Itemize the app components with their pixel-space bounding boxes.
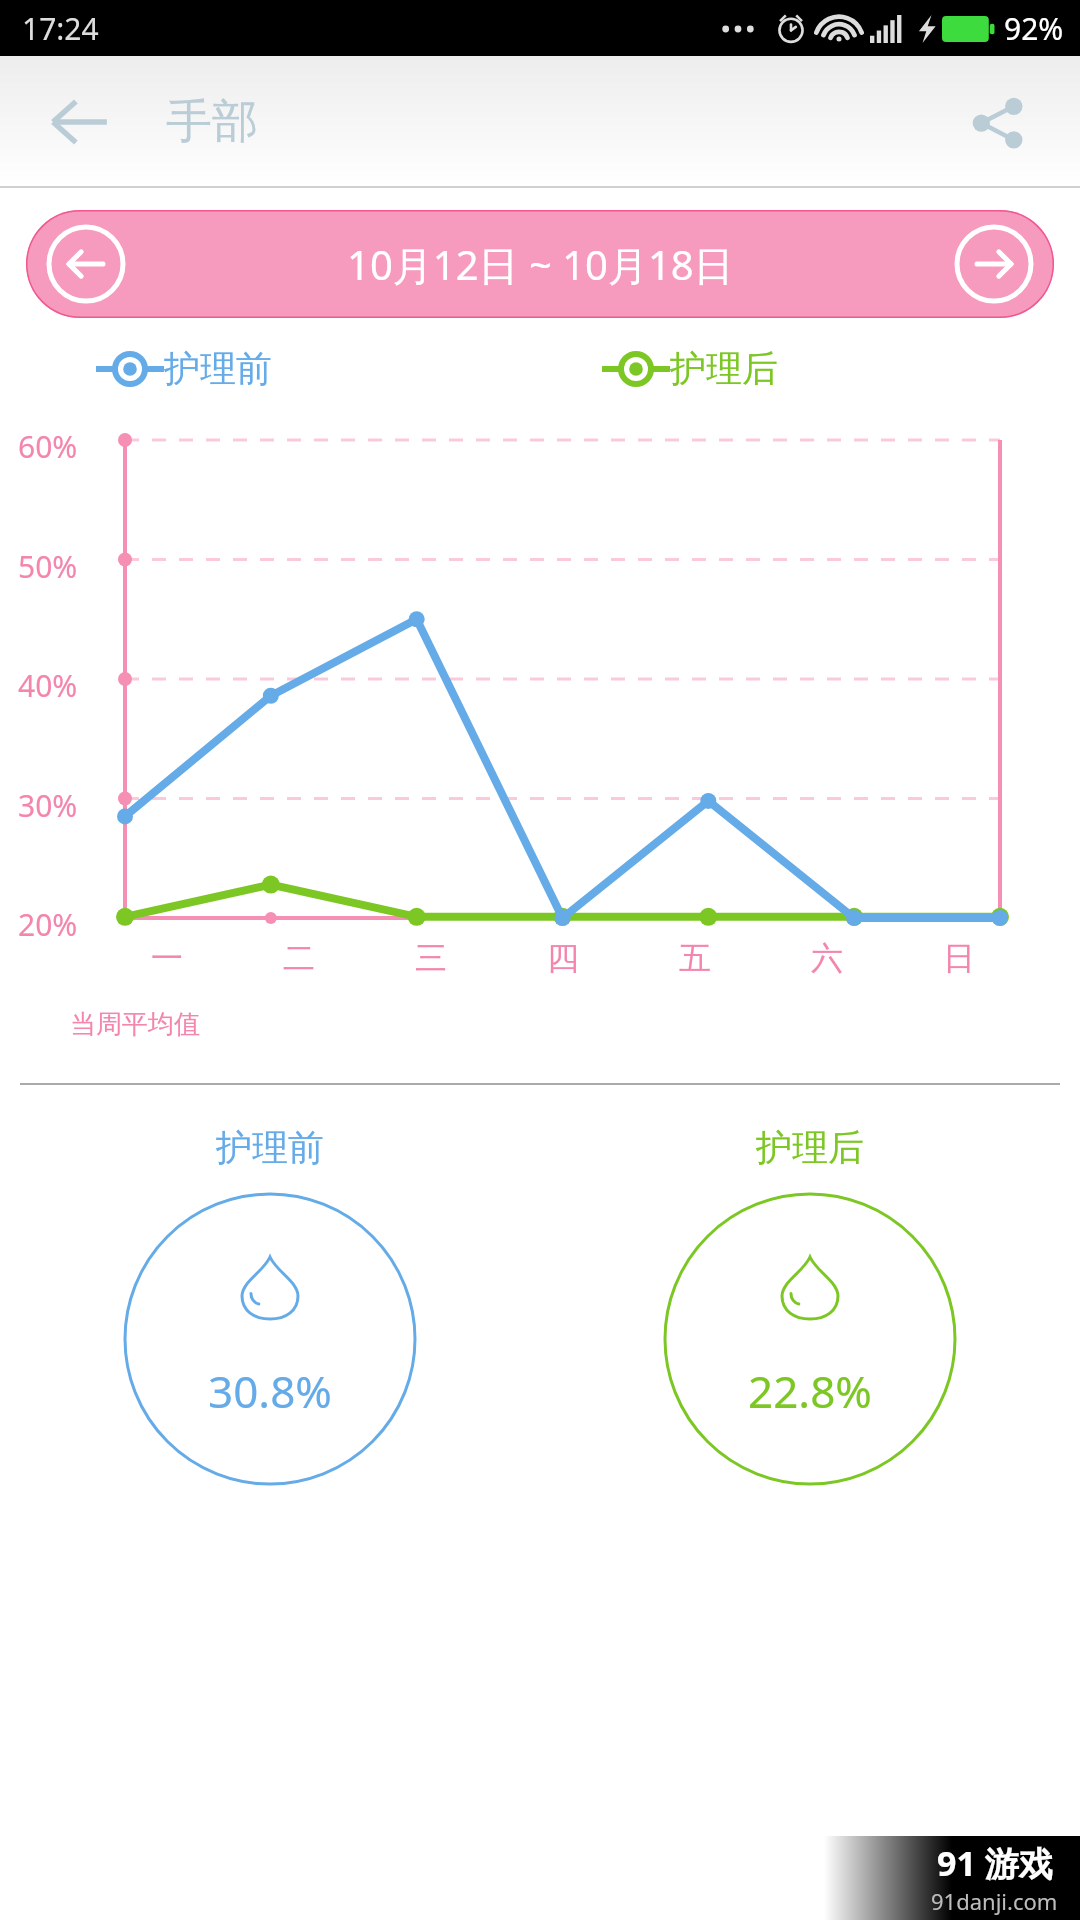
staticText: 护理前 [216, 1125, 324, 1170]
staticText: 护理后 [756, 1125, 864, 1170]
staticText: 22.8% [748, 1361, 872, 1421]
staticText: 30.8% [208, 1361, 332, 1421]
staticText: 三 [415, 938, 447, 978]
staticText: 手部 [166, 93, 258, 151]
staticText: 护理后 [670, 346, 778, 391]
staticText: 护理前 [164, 346, 272, 391]
staticText: 60% [18, 426, 78, 467]
staticText: 二 [283, 938, 315, 978]
button[interactable]: Next week [948, 218, 1040, 310]
button[interactable]: Share [954, 79, 1040, 165]
staticText: 17:24 [22, 8, 99, 49]
staticText: 当周平均值 [70, 1008, 200, 1041]
button[interactable]: 10月12日 ~ 10月18日 [26, 210, 1054, 318]
staticText: 20% [18, 904, 78, 945]
staticText: 92% [1004, 8, 1064, 49]
button[interactable]: Back [36, 79, 122, 165]
staticText: 50% [18, 546, 78, 587]
staticText: 91 游戏 [937, 1840, 1053, 1886]
button[interactable]: Previous week [40, 218, 132, 310]
staticText: 30% [18, 785, 78, 826]
staticText: 40% [18, 665, 78, 706]
staticText: 10月12日 ~ 10月18日 [347, 237, 734, 292]
staticText: 日 [943, 938, 975, 978]
staticText: 一 [151, 938, 183, 978]
staticText: 四 [547, 938, 579, 978]
staticText: 91danji.com [931, 1886, 1058, 1916]
staticText: 六 [811, 938, 843, 978]
staticText: 五 [679, 938, 711, 978]
